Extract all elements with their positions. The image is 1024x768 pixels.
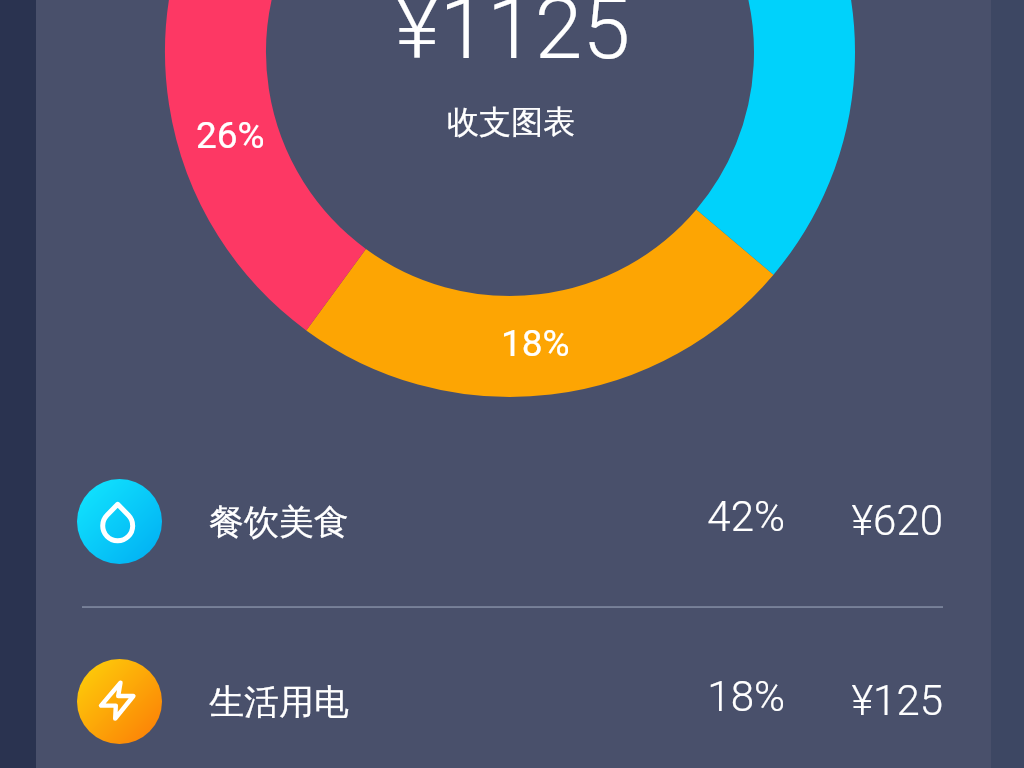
staticText: 餐饮美食 — [209, 500, 349, 544]
staticText: 18% — [635, 672, 785, 721]
staticText: 26% — [196, 114, 265, 157]
button[interactable]: 生活用电 — [36, 612, 991, 768]
button[interactable]: 餐饮美食 — [36, 432, 991, 610]
staticText: ¥125 — [793, 676, 943, 725]
other: 生活用电 — [77, 659, 162, 744]
staticText: 收支图表 — [447, 102, 575, 142]
other: 餐饮美食 — [77, 479, 162, 564]
staticText: 生活用电 — [209, 680, 349, 724]
staticText: 18% — [501, 322, 570, 365]
staticText: 42% — [635, 492, 785, 541]
staticText: ¥1125 — [395, 0, 631, 79]
staticText: ¥620 — [793, 496, 943, 545]
